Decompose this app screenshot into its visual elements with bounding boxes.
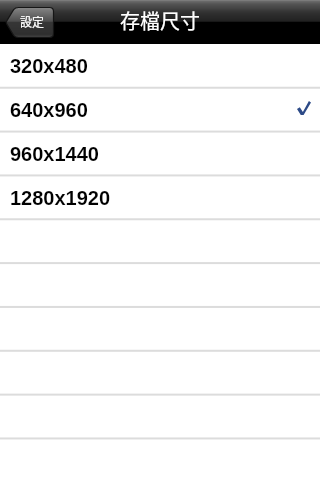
button[interactable]: 320x480 bbox=[0, 44, 320, 88]
staticText: 1280x1920 bbox=[10, 187, 111, 209]
staticText: 320x480 bbox=[10, 55, 88, 77]
button[interactable] bbox=[0, 396, 320, 440]
button[interactable]: 960x1440 bbox=[0, 132, 320, 176]
button[interactable] bbox=[0, 264, 320, 308]
staticText: 960x1440 bbox=[10, 143, 99, 165]
button[interactable]: 640x960 bbox=[0, 88, 320, 132]
button[interactable] bbox=[0, 352, 320, 396]
button[interactable] bbox=[0, 220, 320, 264]
staticText: 640x960 bbox=[10, 99, 88, 121]
staticText: 存檔尺寸 bbox=[120, 6, 200, 35]
button[interactable]: 返回 設定 bbox=[5, 7, 54, 38]
staticText: 設定 bbox=[20, 13, 45, 30]
button[interactable] bbox=[0, 308, 320, 352]
button[interactable]: 1280x1920 bbox=[0, 176, 320, 220]
